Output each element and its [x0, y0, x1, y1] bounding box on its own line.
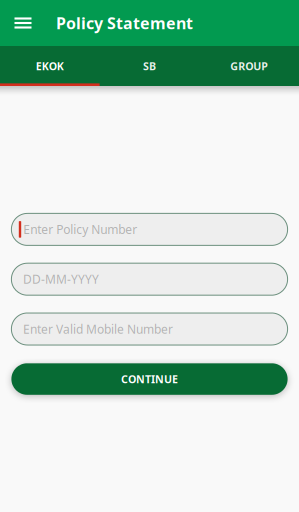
button[interactable]: EKOK: [0, 46, 100, 86]
button[interactable]: GROUP: [199, 46, 299, 86]
staticText: DD-MM-YYYY: [23, 271, 99, 287]
staticText: GROUP: [230, 59, 268, 73]
staticText: EKOK: [36, 59, 64, 73]
button[interactable]: Menu: [0, 0, 46, 46]
staticText: Enter Valid Mobile Number: [23, 321, 173, 337]
staticText: SB: [143, 59, 156, 73]
button[interactable]: DD-MM-YYYY: [11, 263, 288, 295]
staticText: Enter Policy Number: [23, 221, 137, 237]
button[interactable]: CONTINUE: [11, 363, 288, 395]
button[interactable]: Enter Policy Number: [11, 213, 288, 245]
button[interactable]: Enter Valid Mobile Number: [11, 313, 288, 345]
button[interactable]: SB: [100, 46, 199, 86]
staticText: CONTINUE: [121, 372, 178, 386]
staticText: Policy Statement: [56, 12, 193, 34]
